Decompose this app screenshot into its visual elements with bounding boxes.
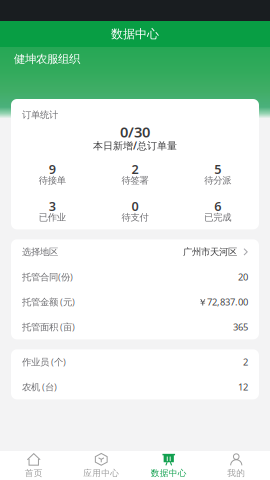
staticText: 广州市天河区 — [183, 246, 237, 258]
staticText: 20 — [238, 270, 248, 283]
staticText: 首页 — [25, 467, 43, 478]
staticText: 5 — [214, 160, 221, 178]
staticText: 数据中心 — [151, 467, 187, 478]
staticText: 农机 (台) — [22, 380, 57, 393]
button[interactable]: 数据中心 — [135, 451, 202, 480]
staticText: 2 — [243, 355, 248, 368]
staticText: 待签署 — [121, 175, 148, 186]
button[interactable]: 5 — [176, 160, 259, 186]
staticText: 0/30 — [120, 122, 150, 142]
staticText: 本日新增/总订单量 — [93, 139, 177, 152]
staticText: 托管合同(份) — [22, 270, 73, 283]
staticText: 订单统计 — [22, 109, 58, 121]
button[interactable]: 9 — [11, 160, 94, 186]
button[interactable]: 3 — [11, 197, 94, 223]
staticText: 6 — [214, 197, 221, 215]
staticText: 待支付 — [121, 212, 148, 223]
staticText: 选择地区 — [22, 246, 58, 258]
staticText: 2 — [131, 160, 138, 178]
button[interactable]: 6 — [176, 197, 259, 223]
staticText: 待分派 — [204, 175, 231, 186]
button[interactable]: 0 — [94, 197, 176, 223]
staticText: ￥72,837.00 — [198, 295, 248, 308]
staticText: 0 — [131, 197, 138, 215]
staticText: 3 — [49, 197, 56, 215]
staticText: 365 — [233, 320, 248, 333]
button[interactable]: 选择地区 — [11, 239, 259, 264]
staticText: 待接单 — [39, 175, 66, 186]
staticText: 健坤农服组织 — [14, 52, 80, 66]
staticText: 托管面积 (亩) — [22, 320, 75, 333]
staticText: 12 — [238, 380, 248, 393]
staticText: 应用中心 — [83, 467, 119, 478]
staticText: 已作业 — [39, 212, 66, 223]
staticText: 我的 — [227, 467, 245, 478]
staticText: 数据中心 — [111, 26, 159, 41]
button[interactable]: 首页 — [0, 451, 67, 480]
button[interactable]: 应用中心 — [67, 451, 135, 480]
staticText: 9 — [49, 160, 56, 178]
button[interactable]: 我的 — [202, 451, 270, 480]
staticText: 已完成 — [204, 212, 231, 223]
staticText: 托管金额 (元) — [22, 295, 75, 308]
button[interactable]: 2 — [94, 160, 176, 186]
staticText: 作业员 (个) — [22, 355, 66, 368]
